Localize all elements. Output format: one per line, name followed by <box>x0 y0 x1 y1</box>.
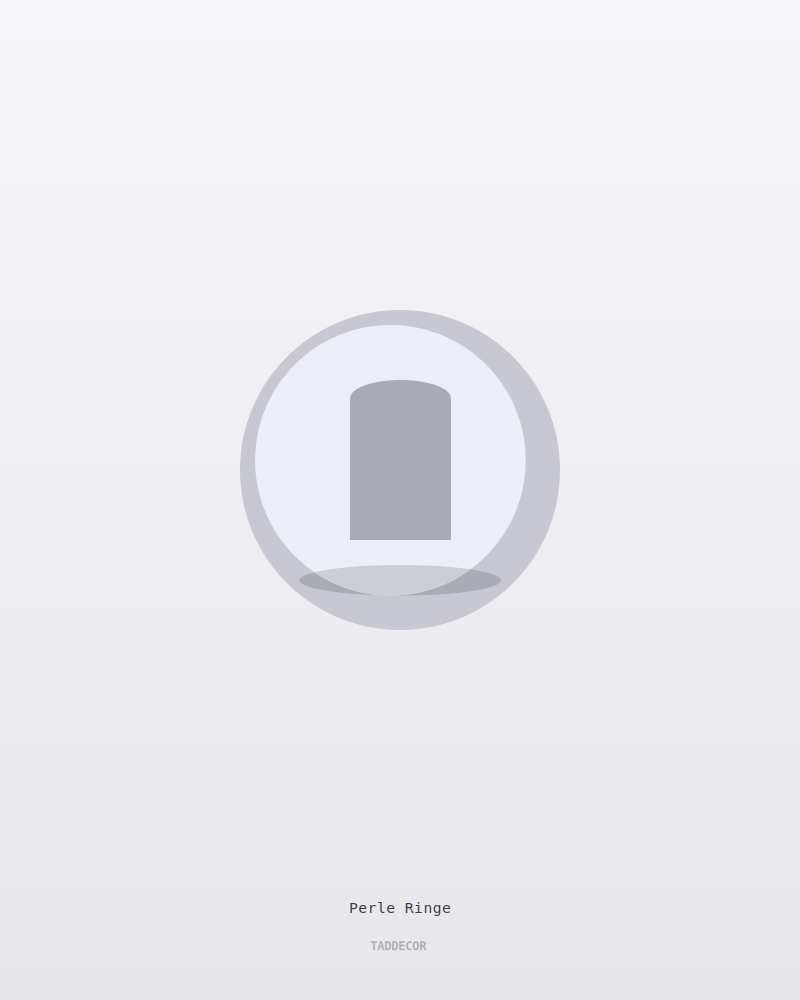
staticText: TADDECOR <box>370 939 426 953</box>
staticText: Perle Ringe <box>349 900 451 916</box>
